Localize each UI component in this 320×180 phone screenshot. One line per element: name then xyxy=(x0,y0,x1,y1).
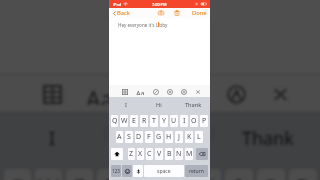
staticText: 123 xyxy=(112,168,120,174)
staticText: Thank xyxy=(242,126,294,150)
button[interactable]: person xyxy=(181,88,187,95)
staticText: T xyxy=(137,172,150,180)
staticText: P xyxy=(202,116,207,126)
button[interactable]: P xyxy=(200,115,208,127)
button[interactable]: slash xyxy=(153,88,159,95)
staticText: O xyxy=(191,116,197,126)
button[interactable]: U xyxy=(170,115,178,127)
staticText: space xyxy=(157,168,171,175)
staticText: O xyxy=(262,172,280,180)
staticText: G xyxy=(156,132,162,142)
button[interactable]: aa xyxy=(86,83,114,105)
button[interactable]: plus xyxy=(182,83,202,105)
staticText: Thank xyxy=(185,101,202,109)
button[interactable]: A xyxy=(116,131,123,143)
button[interactable]: Done xyxy=(191,8,208,18)
staticText: L xyxy=(197,132,201,142)
button[interactable]: Back xyxy=(112,8,131,18)
button[interactable]: R xyxy=(97,169,125,180)
button[interactable]: slash xyxy=(138,83,158,105)
button[interactable]: x xyxy=(270,83,290,105)
button[interactable]: person xyxy=(226,83,246,105)
staticText: Y xyxy=(169,172,182,180)
button[interactable]: space xyxy=(144,165,184,177)
button[interactable]: I xyxy=(225,169,253,180)
staticText: Hi xyxy=(156,101,162,109)
button[interactable]: Z xyxy=(128,148,135,160)
staticText: S xyxy=(127,132,131,142)
staticText: H xyxy=(166,132,172,142)
button[interactable]: aa xyxy=(136,88,145,95)
button[interactable]: x xyxy=(195,88,201,95)
button[interactable]: S xyxy=(125,131,133,143)
button[interactable]: Hi xyxy=(142,97,176,111)
button[interactable]: P xyxy=(289,169,317,180)
staticText: W xyxy=(121,116,128,126)
staticText: Z xyxy=(129,149,134,159)
staticText: return xyxy=(189,168,204,175)
button[interactable]: O xyxy=(190,115,198,127)
staticText: D xyxy=(136,132,142,142)
button[interactable]: Camera xyxy=(157,9,165,17)
button[interactable]: H xyxy=(165,131,173,143)
button[interactable]: F xyxy=(145,131,153,143)
staticText: Q xyxy=(9,172,27,180)
button[interactable]: Hi xyxy=(106,112,214,155)
button[interactable]: K xyxy=(185,131,193,143)
button[interactable]: Y xyxy=(161,169,189,180)
button[interactable]: M xyxy=(185,148,193,160)
button[interactable]: return xyxy=(185,165,208,177)
button[interactable]: Delete xyxy=(173,9,181,17)
button[interactable]: X xyxy=(137,148,144,160)
button[interactable]: Q xyxy=(111,115,118,127)
staticText: Hey everyone it's Libby xyxy=(118,22,168,28)
button[interactable]: Thank xyxy=(214,112,320,155)
button[interactable]: table xyxy=(42,83,62,105)
button[interactable]: I xyxy=(180,115,188,127)
staticText: Y xyxy=(162,116,166,126)
button[interactable]: Dictate xyxy=(133,165,143,177)
staticText: U xyxy=(199,172,216,180)
staticText: Back xyxy=(117,9,130,17)
button[interactable]: R xyxy=(140,115,148,127)
button[interactable]: O xyxy=(257,169,285,180)
button[interactable]: del xyxy=(196,148,208,160)
button[interactable]: T xyxy=(150,115,158,127)
button[interactable]: D xyxy=(135,131,143,143)
button[interactable]: G xyxy=(155,131,163,143)
staticText: I xyxy=(235,172,243,180)
button[interactable]: table xyxy=(122,88,128,95)
button[interactable]: Emoji keyboard xyxy=(122,165,132,177)
button[interactable]: E xyxy=(66,169,93,180)
button[interactable]: plus xyxy=(167,88,173,95)
staticText: M xyxy=(186,149,193,159)
staticText: A xyxy=(117,132,122,142)
staticText: P xyxy=(296,172,310,180)
button[interactable]: N xyxy=(175,148,183,160)
staticText: Hi xyxy=(151,126,169,150)
button[interactable]: C xyxy=(146,148,153,160)
staticText: K xyxy=(187,132,192,142)
button[interactable]: E xyxy=(130,115,138,127)
button[interactable]: B xyxy=(165,148,173,160)
button[interactable]: Thank xyxy=(176,97,210,111)
button[interactable]: 123 xyxy=(111,165,121,177)
button[interactable]: U xyxy=(193,169,221,180)
button[interactable]: Y xyxy=(160,115,168,127)
staticText: U xyxy=(171,116,177,126)
button[interactable]: W xyxy=(120,115,128,127)
button[interactable]: L xyxy=(195,131,203,143)
button[interactable]: V xyxy=(155,148,163,160)
staticText: R xyxy=(104,172,118,180)
staticText: iPod xyxy=(113,2,122,7)
button[interactable]: J xyxy=(175,131,183,143)
button[interactable]: T xyxy=(129,169,157,180)
button[interactable]: shift xyxy=(111,148,123,160)
staticText: X xyxy=(138,149,143,159)
button[interactable]: I xyxy=(109,97,142,111)
button[interactable]: Q xyxy=(4,169,31,180)
staticText: Aa xyxy=(136,88,145,95)
